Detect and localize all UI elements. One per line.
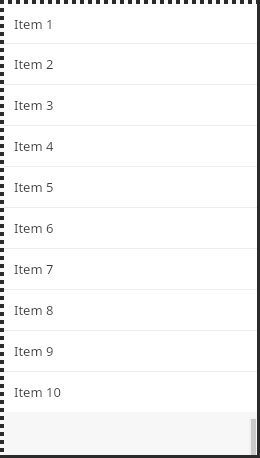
staticText: Item 5 (14, 178, 54, 196)
button[interactable]: Item 9 (4, 331, 257, 371)
button[interactable]: Item 6 (4, 208, 257, 248)
button[interactable]: Item 2 (4, 44, 257, 84)
button[interactable]: Item 10 (4, 372, 257, 412)
staticText: Item 8 (14, 301, 54, 319)
staticText: Item 4 (14, 137, 54, 155)
staticText: Item 2 (14, 55, 54, 73)
staticText: Item 10 (14, 383, 61, 401)
staticText: Item 3 (14, 96, 54, 114)
button[interactable]: Item 4 (4, 126, 257, 166)
staticText: Item 1 (14, 15, 54, 33)
button[interactable]: Item 8 (4, 290, 257, 330)
button[interactable]: Item 5 (4, 167, 257, 207)
button[interactable]: Item 3 (4, 85, 257, 125)
button[interactable]: Item 1 (4, 4, 257, 43)
staticText: Item 9 (14, 342, 54, 360)
staticText: Item 7 (14, 260, 54, 278)
button[interactable]: Item 7 (4, 249, 257, 289)
staticText: Item 6 (14, 219, 54, 237)
